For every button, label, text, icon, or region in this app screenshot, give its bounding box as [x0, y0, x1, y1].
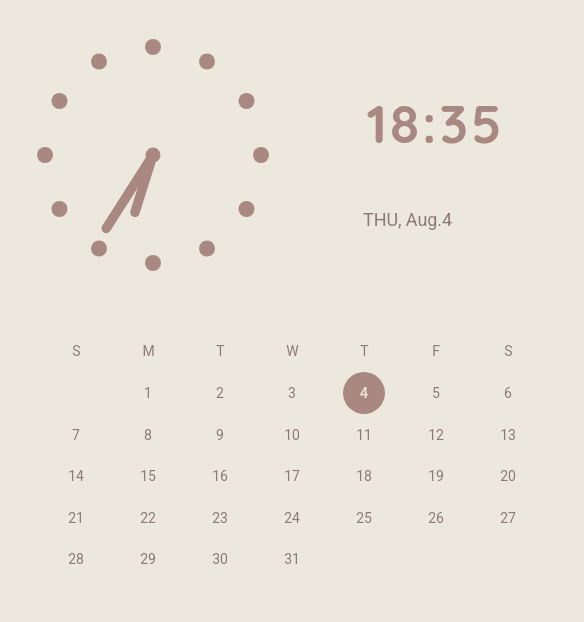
staticText: 12	[428, 427, 444, 443]
button[interactable]: 31	[271, 538, 313, 580]
staticText: 9	[216, 427, 224, 443]
staticText: 2	[216, 385, 224, 401]
staticText: 10	[284, 427, 300, 443]
staticText: 30	[212, 551, 228, 567]
staticText: 7	[72, 427, 80, 443]
button[interactable]: 8	[127, 414, 169, 456]
staticText: 1	[144, 385, 152, 401]
staticText: S	[504, 343, 513, 359]
button[interactable]: 28	[55, 538, 97, 580]
button[interactable]: 25	[343, 497, 385, 539]
staticText: 3	[288, 385, 296, 401]
button[interactable]: 1	[127, 372, 169, 414]
staticText: 20	[500, 468, 516, 484]
button[interactable]: 30	[199, 538, 241, 580]
staticText: 13	[500, 427, 516, 443]
staticText: 16	[212, 468, 228, 484]
button[interactable]: 4	[343, 372, 385, 414]
button[interactable]: 27	[487, 497, 529, 539]
staticText: 14	[68, 468, 84, 484]
button[interactable]: 19	[415, 455, 457, 497]
staticText: 21	[68, 510, 84, 526]
button[interactable]: 14	[55, 455, 97, 497]
button[interactable]: THU, Aug.4	[309, 205, 505, 233]
button[interactable]: 24	[271, 497, 313, 539]
staticText: 28	[68, 551, 84, 567]
staticText: W	[286, 343, 299, 359]
button[interactable]: 18	[343, 455, 385, 497]
staticText: 26	[428, 510, 444, 526]
staticText: 25	[356, 510, 372, 526]
button[interactable]: 6	[487, 372, 529, 414]
staticText: 27	[500, 510, 516, 526]
staticText: T	[216, 343, 225, 359]
button[interactable]: 7	[55, 414, 97, 456]
staticText: 5	[432, 385, 440, 401]
staticText: 18	[356, 468, 372, 484]
staticText: F	[432, 343, 440, 359]
button[interactable]: 23	[199, 497, 241, 539]
button[interactable]: 29	[127, 538, 169, 580]
staticText: 4	[360, 385, 368, 401]
button[interactable]: 20	[487, 455, 529, 497]
button[interactable]: 21	[55, 497, 97, 539]
staticText: THU, Aug.4	[363, 209, 452, 230]
button[interactable]: 5	[415, 372, 457, 414]
staticText: 29	[140, 551, 156, 567]
staticText: M	[142, 343, 155, 359]
staticText: 11	[356, 427, 372, 443]
button[interactable]: 22	[127, 497, 169, 539]
staticText: T	[360, 343, 369, 359]
staticText: 6	[504, 385, 512, 401]
button[interactable]: 18:35	[337, 90, 533, 146]
staticText: 17	[284, 468, 300, 484]
staticText: 8	[144, 427, 152, 443]
staticText: 23	[212, 510, 228, 526]
staticText: S	[72, 343, 81, 359]
button[interactable]: 9	[199, 414, 241, 456]
button[interactable]: 10	[271, 414, 313, 456]
button[interactable]: 13	[487, 414, 529, 456]
button[interactable]: 16	[199, 455, 241, 497]
staticText: 19	[428, 468, 444, 484]
button[interactable]: 17	[271, 455, 313, 497]
button[interactable]: 26	[415, 497, 457, 539]
button[interactable]: 12	[415, 414, 457, 456]
staticText: 22	[140, 510, 156, 526]
staticText: 24	[284, 510, 300, 526]
staticText: 15	[140, 468, 156, 484]
button[interactable]: 3	[271, 372, 313, 414]
button[interactable]: 11	[343, 414, 385, 456]
button[interactable]: 15	[127, 455, 169, 497]
button[interactable]: 2	[199, 372, 241, 414]
staticText: 31	[284, 551, 300, 567]
staticText: 18:35	[366, 90, 505, 146]
button[interactable]: Analog clock showing 18:35	[45, 47, 261, 263]
